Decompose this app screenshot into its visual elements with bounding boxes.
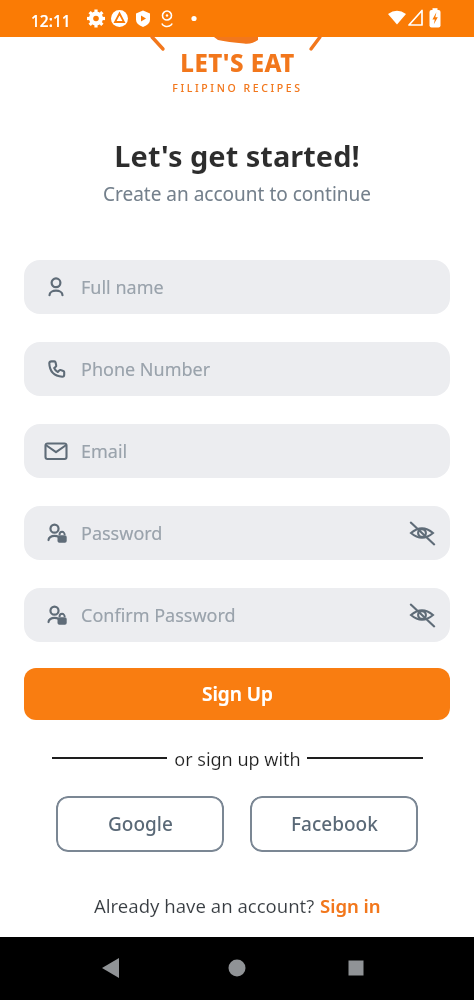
staticText: Let's get started! [114, 136, 360, 175]
staticText: Email [81, 439, 128, 464]
staticText: 12:11 [31, 10, 71, 31]
staticText: Full name [81, 275, 164, 300]
button[interactable]: Sign in [320, 893, 381, 918]
button[interactable]: Confirm Password [24, 588, 450, 642]
button[interactable]: Password [24, 506, 450, 560]
staticText: Confirm Password [81, 603, 236, 628]
staticText: Facebook [291, 811, 378, 837]
button[interactable] [158, 937, 316, 1000]
button[interactable]: Sign Up [24, 668, 450, 720]
button[interactable] [316, 937, 474, 1000]
staticText: Password [81, 521, 163, 546]
staticText: Sign Up [202, 681, 273, 707]
staticText: Already have an account? [94, 893, 320, 918]
button[interactable]: Full name [24, 260, 450, 314]
button[interactable] [0, 937, 158, 1000]
button[interactable]: Phone Number [24, 342, 450, 396]
button[interactable]: Google [56, 796, 224, 852]
staticText: Phone Number [81, 357, 211, 382]
button[interactable]: Facebook [250, 796, 418, 852]
staticText: Create an account to continue [103, 181, 371, 207]
button[interactable]: Email [24, 424, 450, 478]
button[interactable] [408, 601, 436, 629]
staticText: FILIPINO RECIPES [172, 81, 303, 95]
staticText: or sign up with [174, 747, 301, 772]
staticText: Google [108, 811, 173, 837]
staticText: LET'S EAT [180, 46, 295, 79]
button[interactable] [408, 519, 436, 547]
